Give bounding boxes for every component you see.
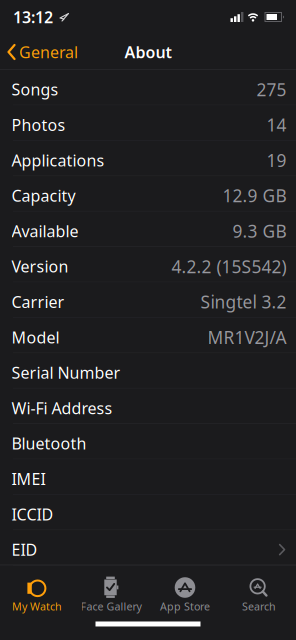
staticText: 4.2.2 (15S542) xyxy=(171,255,286,278)
button[interactable]: App Store xyxy=(148,565,222,613)
button[interactable]: ICCID xyxy=(0,495,296,530)
button[interactable]: Wi-Fi Address xyxy=(0,389,296,424)
staticText: 19 xyxy=(266,149,286,172)
staticText: Version xyxy=(11,256,68,277)
button[interactable]: Search xyxy=(222,565,296,613)
staticText: Singtel 3.2 xyxy=(200,290,286,313)
button[interactable]: Version xyxy=(0,247,296,282)
staticText: Carrier xyxy=(11,291,64,312)
button[interactable]: IMEI xyxy=(0,459,296,495)
staticText: Search xyxy=(242,599,276,613)
staticText: 275 xyxy=(256,78,286,101)
button[interactable]: Bluetooth xyxy=(0,424,296,459)
staticText: 9.3 GB xyxy=(232,219,286,242)
staticText: Photos xyxy=(11,114,65,135)
staticText: App Store xyxy=(160,599,210,613)
staticText: 13:12 xyxy=(13,6,53,28)
staticText: Wi-Fi Address xyxy=(11,397,112,419)
staticText: 14 xyxy=(266,113,286,136)
staticText: Serial Number xyxy=(11,362,120,383)
button[interactable]: Carrier xyxy=(0,282,296,318)
staticText: 12.9 GB xyxy=(222,184,286,207)
staticText: My Watch xyxy=(12,599,62,613)
button[interactable]: Capacity xyxy=(0,176,296,212)
staticText: General xyxy=(19,41,78,63)
button[interactable]: Songs xyxy=(0,70,296,105)
staticText: MR1V2J/A xyxy=(207,326,286,349)
staticText: IMEI xyxy=(11,468,45,489)
staticText: Applications xyxy=(11,150,104,171)
button[interactable]: Serial Number xyxy=(0,353,296,389)
staticText: Model xyxy=(11,327,59,348)
staticText: EID xyxy=(11,539,37,560)
staticText: About xyxy=(124,41,171,63)
button[interactable]: My Watch xyxy=(0,565,74,613)
button[interactable]: Model xyxy=(0,318,296,353)
staticText: ICCID xyxy=(11,504,53,525)
button[interactable]: Available xyxy=(0,212,296,247)
staticText: Songs xyxy=(11,79,58,100)
staticText: Bluetooth xyxy=(11,433,86,454)
staticText: Capacity xyxy=(11,185,75,206)
staticText: Available xyxy=(11,220,78,242)
button[interactable]: Face Gallery xyxy=(74,565,148,613)
button[interactable]: General xyxy=(0,41,78,63)
button[interactable]: Applications xyxy=(0,141,296,176)
staticText: Face Gallery xyxy=(80,599,141,613)
button[interactable]: EID xyxy=(0,530,296,566)
button[interactable]: Photos xyxy=(0,105,296,141)
